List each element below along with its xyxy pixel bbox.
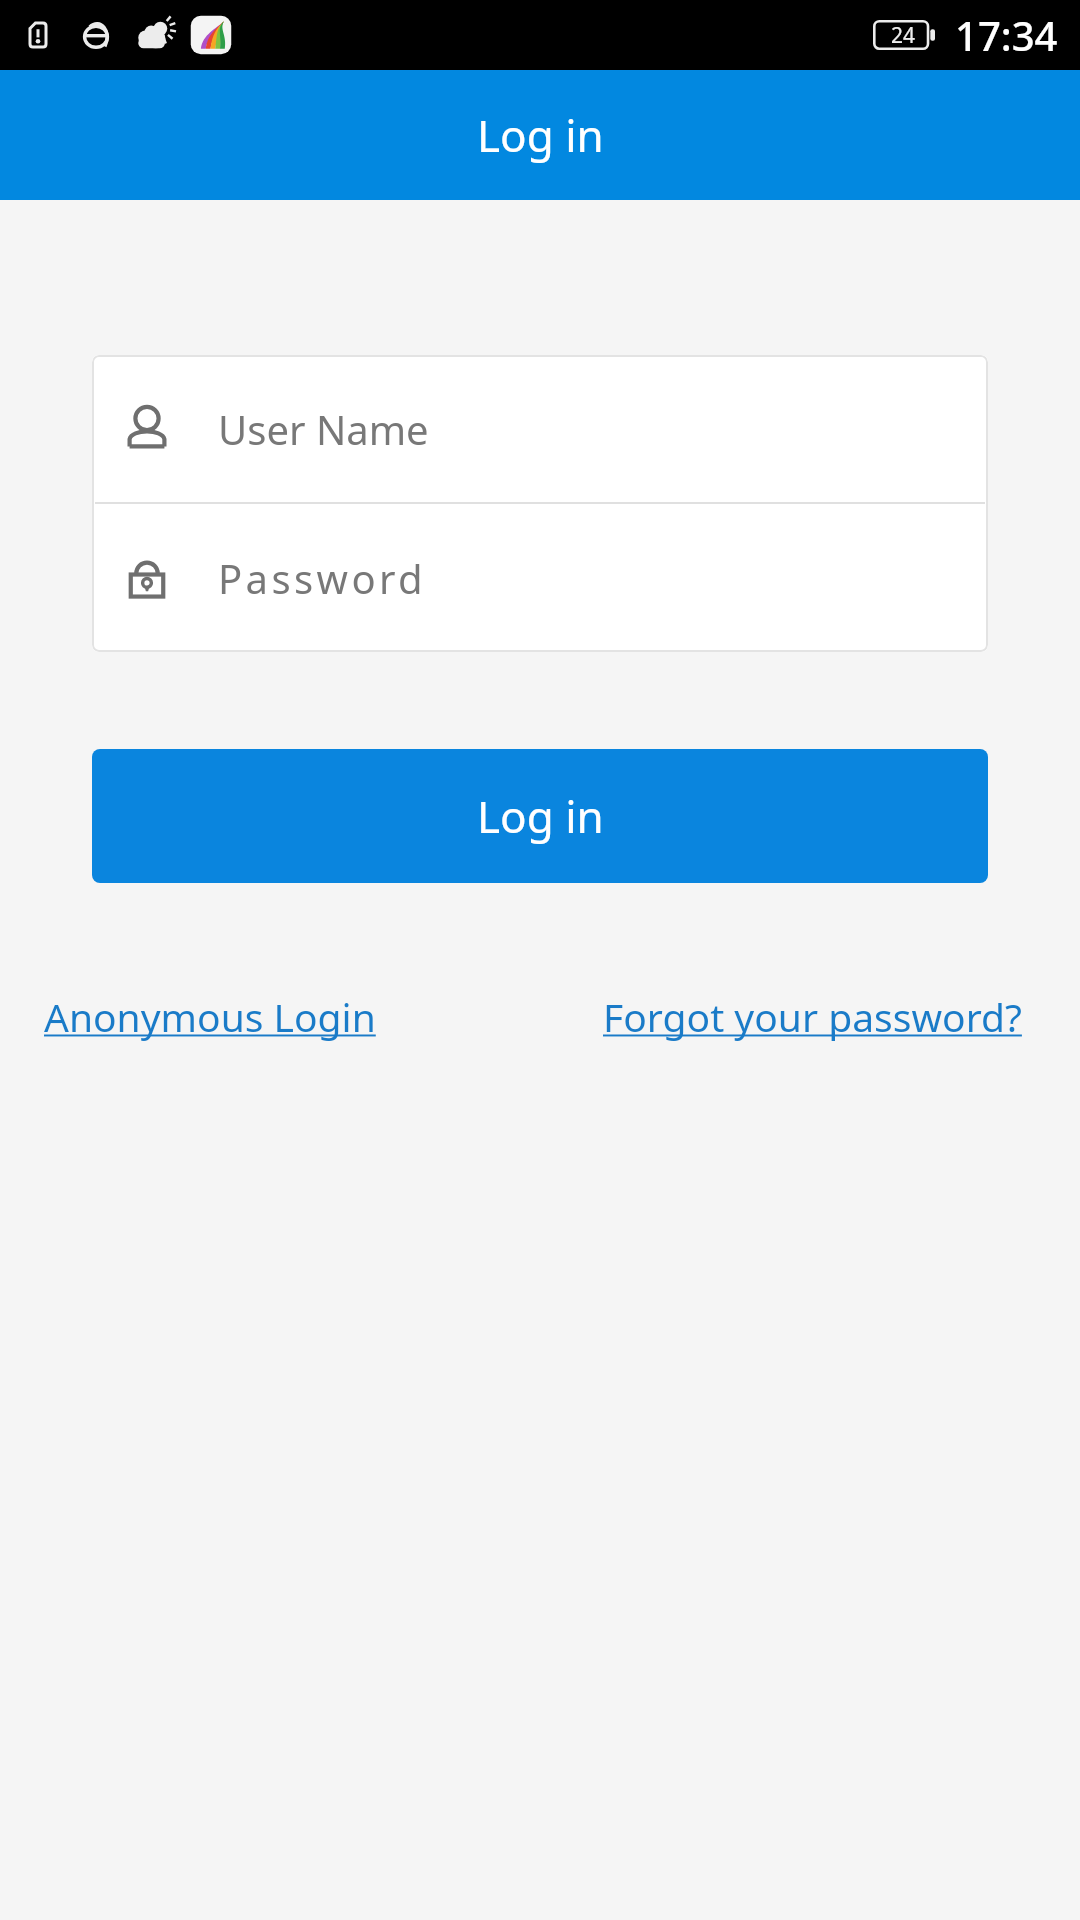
- staticText: Anonymous Login: [44, 990, 376, 1043]
- staticText: 17:34: [955, 8, 1058, 62]
- staticText: Forgot your password?: [603, 990, 1022, 1043]
- button[interactable]: Anonymous Login: [44, 990, 376, 1043]
- staticText: Log in: [477, 105, 604, 165]
- button[interactable]: User Name field: [92, 355, 988, 502]
- button[interactable]: Log in: [92, 749, 988, 883]
- button[interactable]: Forgot your password?: [603, 990, 1022, 1043]
- staticText: 24: [891, 21, 916, 50]
- staticText: Password: [218, 551, 427, 605]
- button[interactable]: Password field: [92, 504, 988, 651]
- staticText: Log in: [477, 786, 604, 846]
- staticText: User Name: [218, 402, 429, 456]
